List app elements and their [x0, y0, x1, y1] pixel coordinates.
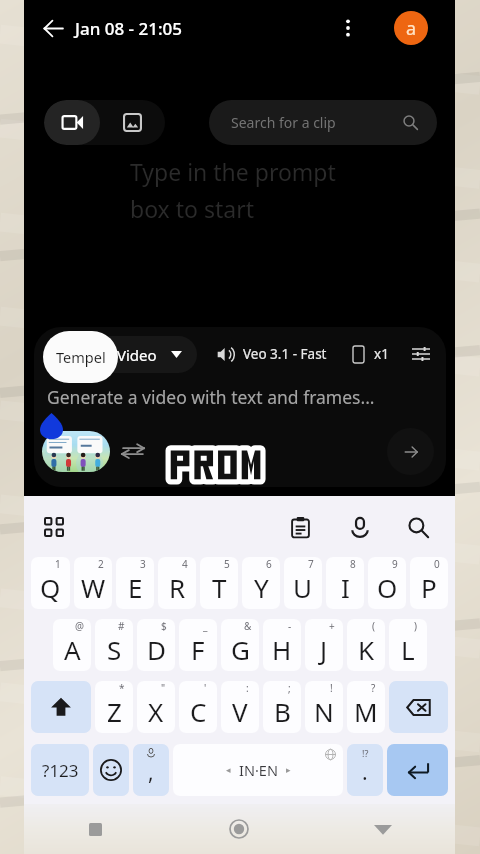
staticText: 9 [392, 557, 398, 571]
button[interactable]: Shift [31, 681, 91, 733]
button[interactable]: 4 [158, 557, 196, 609]
staticText: Q [40, 570, 61, 605]
staticText: C [190, 694, 207, 729]
button[interactable]: # [95, 619, 133, 671]
button[interactable]: 9 [368, 557, 406, 609]
staticText: T [212, 570, 227, 605]
staticText: F [191, 632, 205, 667]
button[interactable]: & [221, 619, 259, 671]
staticText: B [274, 694, 291, 729]
button[interactable]: Video mode [44, 100, 100, 145]
button[interactable]: 6 [242, 557, 280, 609]
staticText: D [147, 632, 166, 667]
button[interactable]: ) [389, 619, 427, 671]
button[interactable]: Space [173, 744, 343, 796]
button[interactable]: Video [70, 336, 197, 373]
button[interactable]: Reference image [42, 431, 110, 472]
staticText: X [148, 694, 164, 729]
button[interactable]: Period [347, 744, 383, 796]
button[interactable]: Clipboard [271, 498, 330, 557]
staticText: 7 [308, 557, 314, 571]
button[interactable]: Symbols [31, 744, 89, 796]
staticText: * [119, 681, 125, 695]
staticText: G [231, 632, 250, 667]
staticText: ▸ [286, 765, 291, 775]
staticText: $ [161, 619, 167, 633]
staticText: Type in the prompt [130, 156, 336, 187]
button[interactable]: 1 [31, 557, 70, 609]
staticText: Generate a video with text and frames... [47, 385, 375, 409]
staticText: H [272, 632, 292, 667]
button[interactable]: - [263, 619, 301, 671]
button[interactable]: _ [179, 619, 217, 671]
staticText: M [354, 694, 378, 729]
button[interactable]: Search [389, 498, 448, 557]
button[interactable]: ! [305, 681, 343, 733]
staticText: . [362, 758, 368, 787]
button[interactable]: ( [347, 619, 385, 671]
button[interactable]: ? [347, 681, 385, 733]
staticText: ; [288, 681, 291, 695]
staticText: Z [107, 694, 122, 729]
button[interactable]: Emoji [93, 744, 129, 796]
button[interactable]: Send [387, 428, 434, 475]
staticText: ? [371, 681, 376, 695]
staticText: 0 [434, 557, 440, 571]
staticText: : [246, 681, 249, 695]
staticText: K [358, 632, 375, 667]
staticText: ?123 [42, 759, 79, 782]
button[interactable]: Comma [133, 744, 169, 796]
button[interactable]: Settings [408, 341, 434, 367]
staticText: Jan 08 - 21:05 [75, 17, 182, 40]
staticText: IN·EN [239, 760, 278, 780]
button[interactable]: Image mode [100, 100, 165, 145]
staticText: 1 [55, 557, 61, 571]
staticText: U [293, 570, 313, 605]
staticText: I [341, 570, 350, 605]
button[interactable]: 2 [74, 557, 112, 609]
button[interactable]: 0 [410, 557, 448, 609]
button[interactable]: Keyboard menu [32, 505, 76, 549]
staticText: Y [254, 570, 269, 605]
staticText: ' [204, 681, 207, 695]
staticText: O [377, 570, 398, 605]
button[interactable]: More options [328, 8, 368, 48]
staticText: @ [75, 619, 84, 633]
staticText: box to start [130, 193, 254, 224]
button[interactable]: $ [137, 619, 175, 671]
button[interactable]: : [221, 681, 259, 733]
button[interactable]: * [95, 681, 133, 733]
staticText: 4 [182, 557, 188, 571]
staticText: 3 [140, 557, 146, 571]
button[interactable]: ; [263, 681, 301, 733]
button[interactable]: 3 [116, 557, 154, 609]
staticText: Video [117, 345, 157, 365]
button[interactable]: x1 [353, 345, 389, 363]
button[interactable]: @ [53, 619, 91, 671]
staticText: S [107, 632, 122, 667]
button[interactable]: Recents [24, 804, 167, 854]
button[interactable]: Veo 3.1 - Fast [217, 345, 327, 363]
button[interactable]: + [305, 619, 343, 671]
button[interactable]: Home [167, 804, 311, 854]
button[interactable]: Tempel [43, 331, 118, 383]
button[interactable]: ' [179, 681, 217, 733]
button[interactable]: Account [394, 11, 428, 45]
button[interactable]: 8 [326, 557, 364, 609]
button[interactable]: Back [32, 7, 74, 49]
button[interactable]: Enter [387, 744, 448, 796]
staticText: ) [414, 619, 417, 633]
staticText: & [244, 619, 252, 633]
staticText: ◂ [226, 765, 231, 775]
button[interactable]: 7 [284, 557, 322, 609]
button[interactable]: Search for a clip [209, 100, 437, 145]
staticText: Veo 3.1 - Fast [243, 345, 327, 363]
staticText: " [161, 681, 166, 695]
staticText: E [128, 570, 143, 605]
button[interactable]: Back [311, 804, 455, 854]
button[interactable]: 5 [200, 557, 238, 609]
button[interactable]: Voice input [330, 498, 389, 557]
staticText: 6 [266, 557, 272, 571]
button[interactable]: " [137, 681, 175, 733]
button[interactable]: Backspace [389, 681, 448, 733]
